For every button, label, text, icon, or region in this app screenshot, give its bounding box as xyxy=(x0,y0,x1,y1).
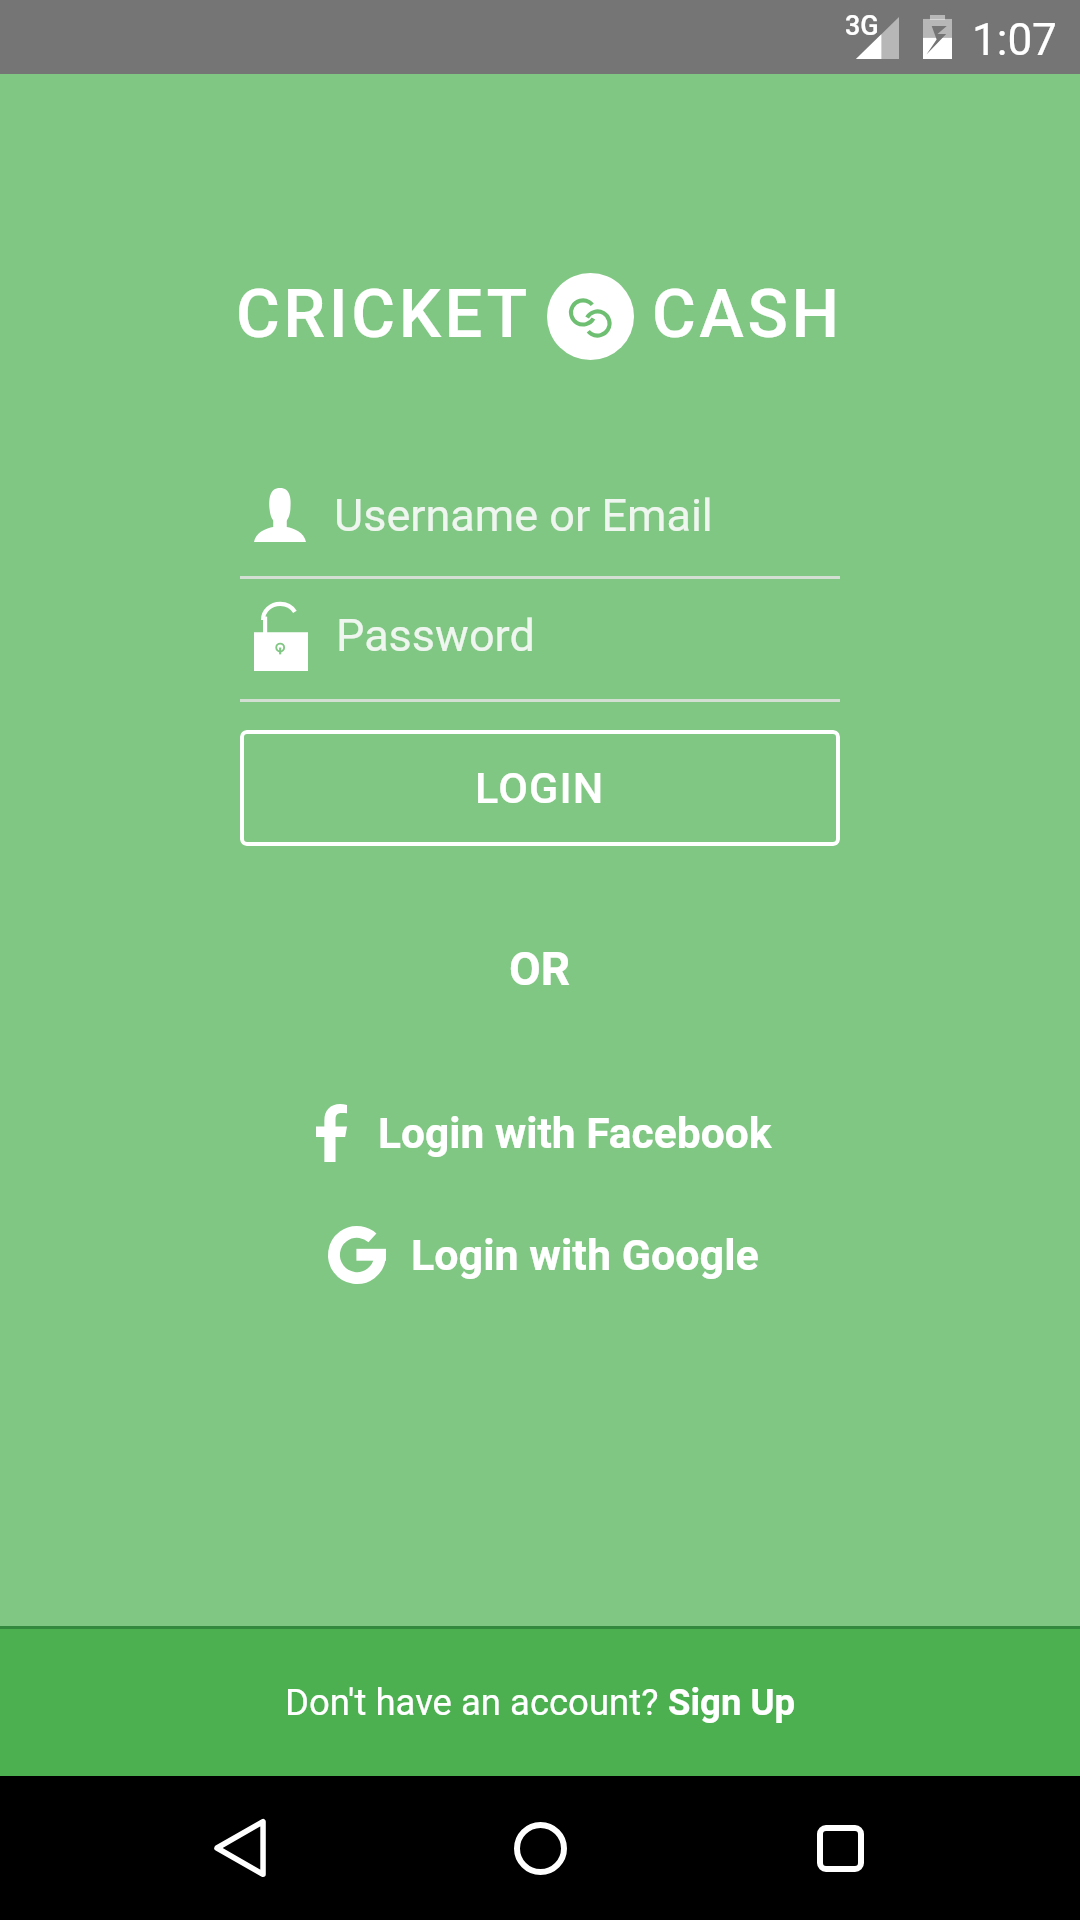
staticText: Login with Google xyxy=(411,1230,759,1280)
staticText: OR xyxy=(509,942,571,996)
button[interactable]: Don't have an account? xyxy=(0,1629,1080,1776)
button[interactable]: Username or Email xyxy=(240,470,840,579)
button[interactable]: Recent apps xyxy=(780,1786,900,1910)
button[interactable]: Login with Facebook xyxy=(310,1105,778,1162)
button[interactable]: Home xyxy=(480,1786,600,1910)
button[interactable]: Back xyxy=(180,1786,300,1910)
staticText: CASH xyxy=(652,275,843,354)
staticText: 3G xyxy=(845,10,879,42)
staticText: CRICKET xyxy=(236,275,531,354)
staticText: Sign Up xyxy=(668,1681,796,1724)
staticText: LOGIN xyxy=(475,763,605,813)
staticText: Login with Facebook xyxy=(378,1109,772,1159)
staticText: Username or Email xyxy=(334,489,713,542)
button[interactable]: LOGIN xyxy=(240,730,840,846)
button[interactable]: Login with Google xyxy=(322,1226,765,1284)
staticText: 1:07 xyxy=(972,14,1057,66)
staticText: Don't have an account? xyxy=(285,1681,668,1724)
button[interactable]: Password xyxy=(240,594,840,702)
staticText: Password xyxy=(336,609,535,662)
